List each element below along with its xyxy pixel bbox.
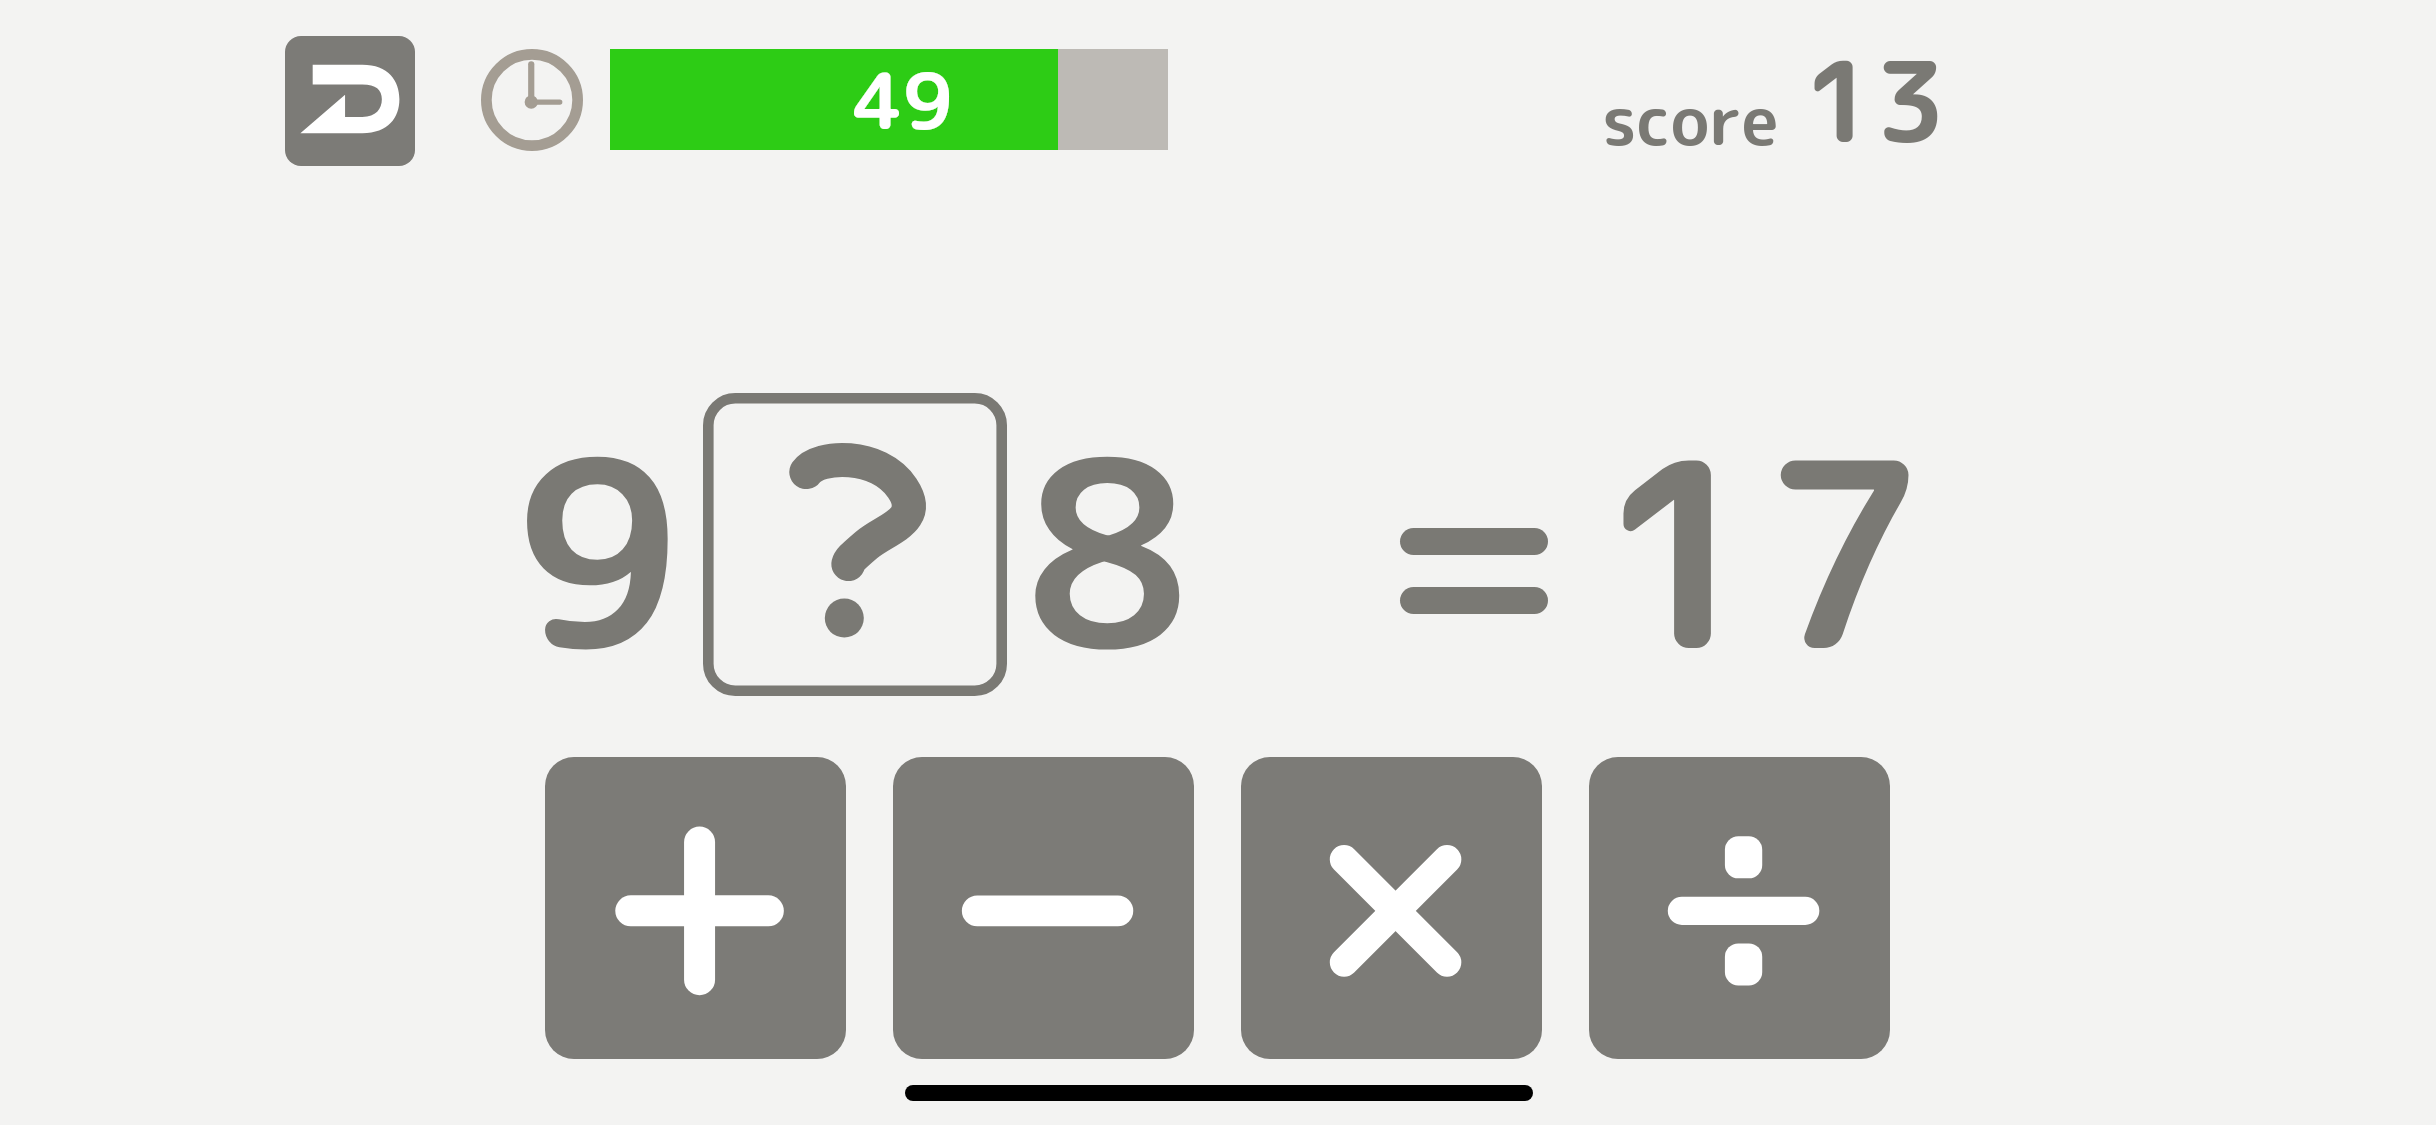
button[interactable]: Minus [893,757,1194,1059]
button[interactable]: Multiply [1241,757,1542,1059]
staticText: 17 [1597,372,1926,731]
button[interactable]: Undo [285,36,415,166]
staticText: 8 [1025,371,1190,730]
staticText: 9 [516,371,681,730]
other: Time remaining [481,49,583,151]
staticText: 13 [1803,22,1947,178]
staticText: score [1602,73,1779,166]
staticText: 49 [853,45,953,146]
button[interactable]: Plus [545,757,846,1059]
button[interactable]: Divide [1589,757,1890,1059]
button[interactable]: Missing operator [703,393,1007,696]
